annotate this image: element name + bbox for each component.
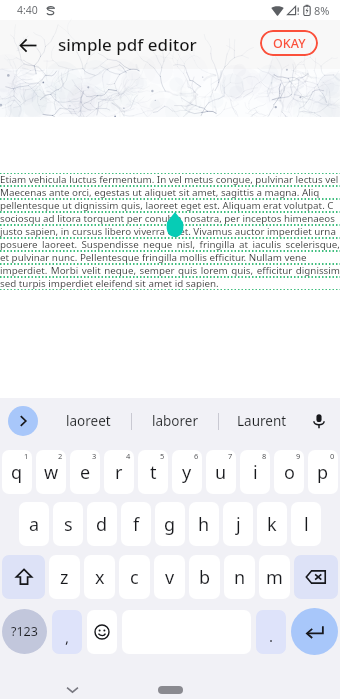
- staticText: 8%: [314, 3, 330, 18]
- staticText: 7: [228, 451, 233, 461]
- button[interactable]: j: [223, 502, 253, 546]
- button[interactable]: m: [259, 555, 290, 599]
- button[interactable]: Back: [8, 25, 48, 65]
- button[interactable]: c: [119, 555, 150, 599]
- button[interactable]: Backspace: [294, 555, 338, 599]
- staticText: u: [215, 460, 227, 485]
- button[interactable]: d: [87, 502, 117, 546]
- staticText: 0: [330, 451, 335, 461]
- staticText: pellentesque ut dignissim quis, laoreet …: [0, 199, 340, 212]
- staticText: 3: [92, 451, 97, 461]
- staticText: t: [150, 460, 157, 485]
- staticText: sociosqu ad litora torquent per conubia …: [0, 212, 340, 225]
- staticText: Maecenas ante orci, egestas ut aliquet s…: [0, 186, 340, 199]
- staticText: a: [29, 512, 40, 537]
- staticText: h: [198, 512, 210, 537]
- staticText: .: [269, 626, 274, 646]
- button[interactable]: o: [274, 450, 304, 494]
- button[interactable]: Hide keyboard: [62, 679, 82, 699]
- button[interactable]: .: [256, 610, 286, 654]
- button[interactable]: h: [189, 502, 219, 546]
- staticText: simple pdf editor: [58, 33, 197, 56]
- staticText: d: [96, 512, 108, 537]
- button[interactable]: ,: [52, 610, 82, 654]
- staticText: w: [44, 460, 59, 485]
- button[interactable]: Emoji: [87, 610, 117, 654]
- staticText: posuere laoreet. Suspendisse neque nisl,…: [0, 238, 340, 251]
- staticText: z: [60, 565, 69, 590]
- button[interactable]: q: [2, 450, 32, 494]
- staticText: x: [95, 565, 105, 590]
- button[interactable]: k: [257, 502, 287, 546]
- staticText: q: [11, 460, 23, 485]
- staticText: k: [267, 512, 277, 537]
- button[interactable]: ?123: [2, 609, 47, 654]
- button[interactable]: OKAY: [260, 30, 318, 56]
- staticText: g: [164, 512, 176, 537]
- staticText: justo sapien, in cursus libero viverra e…: [0, 225, 340, 238]
- staticText: r: [115, 460, 123, 485]
- staticText: 8: [262, 451, 267, 461]
- staticText: laoreet: [66, 412, 111, 430]
- button[interactable]: t: [138, 450, 168, 494]
- staticText: b: [199, 565, 211, 590]
- button[interactable]: f: [121, 502, 151, 546]
- staticText: 4:40: [17, 3, 38, 17]
- staticText: e: [80, 460, 91, 485]
- button[interactable]: y: [172, 450, 202, 494]
- button[interactable]: u: [206, 450, 236, 494]
- button[interactable]: laborer: [132, 398, 218, 444]
- staticText: 2: [58, 451, 63, 461]
- button[interactable]: g: [155, 502, 185, 546]
- staticText: l: [304, 512, 309, 537]
- staticText: sed turpis imperdiet eleifend sit amet i…: [0, 277, 340, 290]
- button[interactable]: Enter: [291, 608, 338, 655]
- button[interactable]: laoreet: [45, 398, 131, 444]
- staticText: ,: [65, 627, 70, 647]
- staticText: o: [284, 460, 295, 485]
- staticText: v: [165, 565, 175, 590]
- staticText: m: [266, 565, 283, 590]
- staticText: 1: [24, 451, 29, 461]
- staticText: imperdiet. Morbi velit neque, semper qui…: [0, 264, 340, 277]
- staticText: c: [130, 565, 139, 590]
- button[interactable]: x: [84, 555, 115, 599]
- staticText: f: [133, 512, 140, 537]
- staticText: Laurent: [237, 412, 287, 430]
- button[interactable]: a: [19, 502, 49, 546]
- button[interactable]: p: [308, 450, 338, 494]
- staticText: Etiam vehicula luctus fermentum. In vel …: [0, 173, 340, 186]
- button[interactable]: Laurent: [219, 398, 305, 444]
- button[interactable]: w: [36, 450, 66, 494]
- button[interactable]: z: [49, 555, 80, 599]
- button[interactable]: More suggestions: [8, 406, 38, 436]
- button[interactable]: Voice input: [306, 408, 332, 434]
- staticText: laborer: [152, 412, 199, 430]
- staticText: n: [234, 565, 246, 590]
- staticText: i: [253, 460, 258, 485]
- staticText: 9: [296, 451, 301, 461]
- button[interactable]: v: [154, 555, 185, 599]
- button[interactable]: i: [240, 450, 270, 494]
- staticText: s: [64, 512, 73, 537]
- staticText: y: [182, 460, 192, 485]
- staticText: ?123: [11, 623, 38, 640]
- button[interactable]: l: [291, 502, 321, 546]
- button[interactable]: s: [53, 502, 83, 546]
- staticText: OKAY: [273, 35, 306, 52]
- staticText: p: [317, 460, 329, 485]
- button[interactable]: b: [189, 555, 220, 599]
- staticText: j: [236, 512, 241, 537]
- staticText: 5: [160, 451, 165, 461]
- button[interactable]: e: [70, 450, 100, 494]
- staticText: et pulvinar nunc. Pellentesque fringilla…: [0, 251, 340, 264]
- button[interactable]: Shift: [2, 555, 45, 599]
- staticText: 6: [194, 451, 199, 461]
- button[interactable]: n: [224, 555, 255, 599]
- button[interactable]: r: [104, 450, 134, 494]
- staticText: 4: [126, 451, 131, 461]
